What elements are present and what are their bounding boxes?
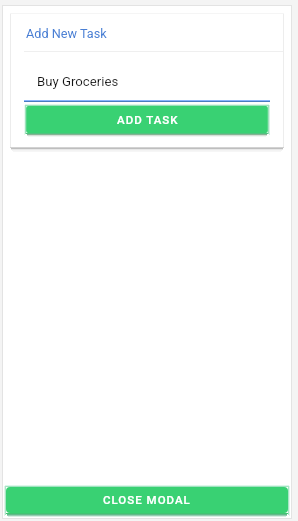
button[interactable]: ADD TASK xyxy=(26,106,268,133)
staticText: ADD TASK xyxy=(117,113,179,126)
staticText: Buy Groceries xyxy=(37,74,119,89)
button[interactable]: Add New Task xyxy=(24,18,283,49)
button[interactable]: Task name text field xyxy=(24,68,270,102)
staticText: CLOSE MODAL xyxy=(103,493,191,506)
staticText: Add New Task xyxy=(26,26,107,41)
button[interactable]: CLOSE MODAL xyxy=(6,487,288,513)
